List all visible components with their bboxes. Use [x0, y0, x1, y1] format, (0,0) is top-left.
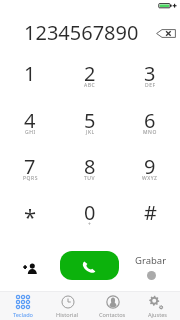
staticText: 0	[84, 199, 96, 226]
staticText: WXYZ	[142, 175, 158, 182]
button[interactable]: 5	[60, 99, 120, 145]
button[interactable]: Teclado	[0, 292, 45, 320]
staticText: 2	[84, 60, 96, 87]
button[interactable]: Ajustes	[135, 292, 180, 320]
button[interactable]: #	[120, 191, 180, 237]
staticText: 1	[24, 60, 36, 87]
staticText: 8	[84, 153, 96, 180]
staticText: GHI	[25, 129, 36, 136]
staticText: *	[24, 201, 37, 231]
staticText: 4	[24, 107, 36, 134]
staticText: DEF	[145, 82, 156, 89]
button[interactable]: 3	[120, 52, 180, 99]
button[interactable]: 8	[60, 145, 120, 191]
staticText: Historial	[56, 311, 79, 319]
button[interactable]: 6	[120, 99, 180, 145]
button[interactable]: *	[0, 191, 60, 237]
staticText: 6	[144, 107, 156, 134]
button[interactable]: Grabar	[129, 254, 173, 282]
staticText: MNO	[143, 129, 157, 136]
button[interactable]: 9	[120, 145, 180, 191]
button[interactable]: Backspace	[152, 21, 180, 45]
staticText: 7	[24, 153, 36, 180]
staticText: JKL	[86, 129, 95, 136]
button[interactable]: Add contact	[14, 252, 46, 284]
staticText: Grabar	[135, 254, 167, 267]
button[interactable]: Call	[60, 251, 119, 280]
staticText: PQRS	[23, 175, 38, 182]
button[interactable]: Contactos	[90, 292, 135, 320]
staticText: 5	[84, 107, 96, 134]
button[interactable]: Historial	[45, 292, 90, 320]
staticText: ABC	[84, 82, 96, 89]
staticText: #	[144, 199, 157, 226]
button[interactable]: 4	[0, 99, 60, 145]
staticText: Ajustes	[148, 311, 168, 319]
button[interactable]: 0	[60, 191, 120, 237]
button[interactable]: 7	[0, 145, 60, 191]
staticText: Teclado	[13, 311, 33, 319]
staticText: +	[88, 221, 92, 228]
staticText: 1234567890	[24, 19, 139, 46]
staticText: TUV	[84, 175, 96, 182]
staticText: 3	[144, 60, 156, 87]
button[interactable]: 1	[0, 52, 60, 99]
button[interactable]: 2	[60, 52, 120, 99]
staticText: Contactos	[99, 311, 126, 319]
staticText: 9	[144, 153, 156, 180]
